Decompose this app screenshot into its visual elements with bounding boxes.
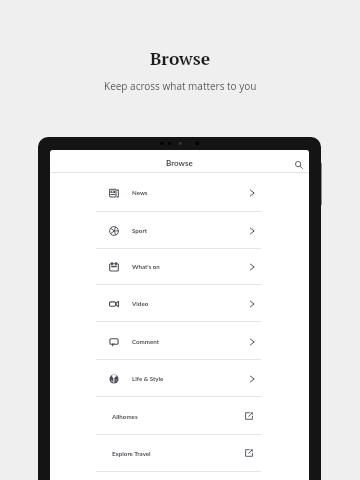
button[interactable]: What's on (96, 248, 261, 285)
staticText: Browse (166, 158, 193, 168)
staticText: Life & Style (132, 375, 164, 382)
staticText: Video (132, 300, 149, 307)
button[interactable]: News (96, 173, 261, 212)
button[interactable]: Comment (96, 323, 261, 360)
staticText: Comment (132, 338, 159, 345)
staticText: Sport (132, 227, 148, 234)
button[interactable]: Search (292, 158, 306, 172)
other: Open external link (244, 448, 254, 458)
staticText: Browse (150, 47, 211, 70)
button[interactable]: Life & Style (96, 360, 261, 397)
staticText: What's on (132, 263, 160, 270)
staticText: News (132, 189, 148, 196)
staticText: Allhomes (112, 413, 138, 420)
button[interactable]: Sport (96, 212, 261, 249)
staticText: Explore Travel (112, 450, 151, 457)
button[interactable]: Allhomes (96, 397, 261, 435)
button[interactable]: Video (96, 285, 261, 322)
other: Open external link (244, 411, 254, 421)
button[interactable]: Explore Travel (96, 434, 261, 472)
staticText: Keep across what matters to you (104, 79, 257, 93)
